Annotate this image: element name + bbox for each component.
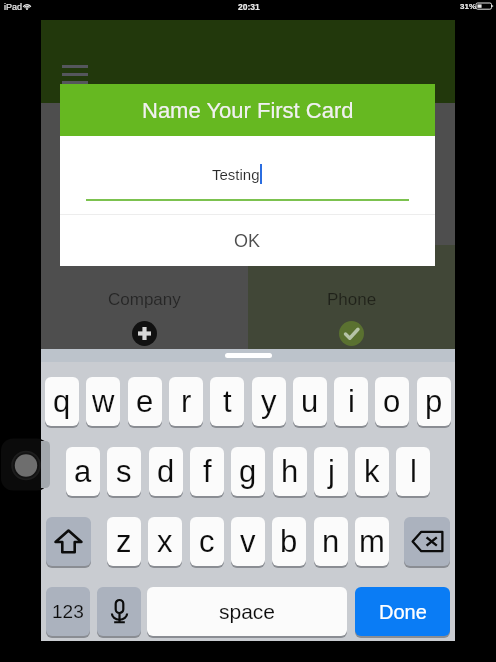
- button[interactable]: Phone: [248, 245, 455, 349]
- button[interactable]: mic: [97, 587, 141, 636]
- button[interactable]: f: [190, 447, 224, 496]
- staticText: t: [223, 384, 232, 419]
- button[interactable]: space: [147, 587, 347, 636]
- button[interactable]: j: [314, 447, 348, 496]
- staticText: p: [425, 384, 443, 419]
- button[interactable]: Open navigation menu: [62, 65, 88, 84]
- staticText: Name Your First Card: [142, 98, 354, 123]
- button[interactable]: v: [231, 517, 265, 566]
- staticText: u: [301, 384, 319, 419]
- staticText: space: [219, 600, 276, 623]
- staticText: l: [410, 454, 417, 489]
- staticText: y: [261, 384, 277, 419]
- button[interactable]: i: [334, 377, 368, 426]
- staticText: v: [240, 524, 256, 559]
- staticText: z: [116, 524, 132, 559]
- button[interactable]: AssistiveTouch: [0, 438, 41, 491]
- staticText: c: [199, 524, 215, 559]
- staticText: 31%: [460, 2, 477, 11]
- button[interactable]: t: [210, 377, 244, 426]
- staticText: o: [383, 384, 401, 419]
- button[interactable]: OK: [60, 215, 435, 266]
- staticText: q: [53, 384, 71, 419]
- button[interactable]: Company: [41, 245, 248, 349]
- staticText: w: [92, 384, 115, 419]
- button[interactable]: a: [66, 447, 100, 496]
- staticText: a: [74, 454, 92, 489]
- button[interactable]: n: [314, 517, 348, 566]
- staticText: b: [280, 524, 298, 559]
- button[interactable]: r: [169, 377, 203, 426]
- staticText: Testing: [212, 166, 260, 183]
- button[interactable]: c: [190, 517, 224, 566]
- button[interactable]: p: [417, 377, 451, 426]
- button[interactable]: e: [128, 377, 162, 426]
- button[interactable]: y: [252, 377, 286, 426]
- button[interactable]: u: [293, 377, 327, 426]
- button[interactable]: shift: [46, 517, 91, 566]
- staticText: OK: [234, 231, 261, 251]
- staticText: i: [348, 384, 355, 419]
- button[interactable]: g: [231, 447, 265, 496]
- button[interactable]: k: [355, 447, 389, 496]
- staticText: Phone: [327, 290, 377, 309]
- staticText: k: [364, 454, 380, 489]
- button[interactable]: z: [107, 517, 141, 566]
- button[interactable]: q: [45, 377, 79, 426]
- staticText: h: [281, 454, 299, 489]
- button[interactable]: bksp: [404, 517, 450, 566]
- staticText: x: [157, 524, 173, 559]
- button[interactable]: b: [272, 517, 306, 566]
- button[interactable]: h: [273, 447, 307, 496]
- staticText: Done: [379, 601, 427, 623]
- button[interactable]: x: [148, 517, 182, 566]
- button[interactable]: s: [107, 447, 141, 496]
- button[interactable]: m: [355, 517, 389, 566]
- staticText: Company: [108, 290, 181, 309]
- button[interactable]: o: [375, 377, 409, 426]
- staticText: s: [116, 454, 132, 489]
- staticText: d: [157, 454, 175, 489]
- staticText: 20:31: [238, 2, 260, 11]
- staticText: iPad: [4, 2, 23, 12]
- button[interactable]: d: [149, 447, 183, 496]
- staticText: n: [322, 524, 340, 559]
- staticText: 123: [52, 601, 84, 622]
- staticText: g: [239, 454, 257, 489]
- button[interactable]: w: [86, 377, 120, 426]
- button[interactable]: 123: [46, 587, 90, 636]
- staticText: j: [328, 454, 335, 489]
- staticText: m: [359, 524, 385, 559]
- button[interactable]: l: [396, 447, 430, 496]
- staticText: e: [136, 384, 154, 419]
- staticText: f: [203, 454, 212, 489]
- staticText: r: [181, 384, 192, 419]
- button[interactable]: Done: [355, 587, 450, 636]
